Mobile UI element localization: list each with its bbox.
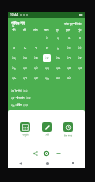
button[interactable]: ১৬ bbox=[54, 54, 62, 62]
staticText: ১২ bbox=[12, 56, 16, 60]
button[interactable]: ১ bbox=[43, 34, 51, 42]
button[interactable]: ৩ bbox=[65, 34, 73, 42]
button[interactable]: Recent apps bbox=[69, 159, 77, 167]
staticText: ৩০ bbox=[56, 76, 61, 80]
staticText: ২৯ bbox=[45, 76, 50, 80]
button[interactable]: ৮ bbox=[43, 44, 51, 52]
button[interactable]: অনুষ্ঠান bbox=[20, 122, 30, 137]
staticText: ১০ bbox=[67, 46, 71, 50]
button[interactable]: ৯ bbox=[54, 44, 62, 52]
staticText: ৩ bbox=[68, 36, 71, 40]
staticText: ১৯ bbox=[12, 66, 16, 70]
staticText: মঙ্গল bbox=[44, 29, 49, 32]
button[interactable]: ২৪ bbox=[65, 64, 73, 72]
staticText: ২ bbox=[57, 36, 60, 40]
staticText: বৃহস bbox=[66, 29, 71, 32]
staticText: ১৪ bbox=[34, 56, 38, 60]
staticText: ২৩ bbox=[56, 66, 61, 70]
button[interactable]: ১৯ bbox=[10, 64, 18, 72]
button[interactable]: ১১ bbox=[76, 44, 84, 52]
button[interactable]: ১২ bbox=[10, 54, 18, 62]
staticText: ১৪ বৈশাখ bbox=[11, 88, 22, 93]
staticText: ২১ bbox=[34, 66, 38, 70]
staticText: অনুষ্ঠান bbox=[22, 134, 29, 137]
button[interactable]: ১৫ bbox=[43, 54, 51, 62]
button[interactable]: Back bbox=[16, 159, 24, 167]
button[interactable]: ১৭ bbox=[65, 54, 73, 62]
staticText: ১৮ bbox=[78, 56, 82, 60]
staticText: ৩১ bbox=[67, 76, 71, 80]
staticText: ২৪ bbox=[67, 66, 71, 70]
button[interactable]: ২ bbox=[54, 34, 62, 42]
staticText: ৪ bbox=[79, 36, 81, 40]
button[interactable]: ২৬ bbox=[10, 74, 18, 82]
staticText: ৮ bbox=[46, 46, 49, 50]
staticText: শুক্র bbox=[78, 29, 82, 32]
button[interactable]: ২৫ bbox=[76, 64, 84, 72]
staticText: পূর্ববঙ্গ সন bbox=[11, 20, 25, 26]
staticText: দিন গণনা bbox=[64, 134, 72, 138]
button[interactable]: ৫ bbox=[10, 44, 18, 52]
staticText: ১৪৪৫ bbox=[26, 97, 31, 100]
staticText: ২৮ bbox=[34, 76, 39, 80]
staticText: ৯ bbox=[57, 46, 60, 50]
button[interactable]: Home bbox=[43, 159, 51, 167]
button[interactable]: ১০ bbox=[65, 44, 73, 52]
staticText: ১৫ bbox=[45, 56, 49, 60]
staticText: ১৪৩১ bbox=[23, 90, 28, 93]
button[interactable]: ১৮ bbox=[76, 54, 84, 62]
button[interactable]: ২৯ bbox=[43, 74, 51, 82]
button[interactable]: More bbox=[55, 150, 61, 156]
staticText: ২৯ এপ্রিল bbox=[11, 102, 22, 107]
staticText: 10:44 bbox=[10, 13, 19, 17]
staticText: ৫ bbox=[13, 46, 16, 50]
staticText: নোট bbox=[45, 134, 49, 137]
button[interactable]: ৬ bbox=[21, 44, 29, 52]
staticText: ২৭ bbox=[23, 76, 27, 80]
staticText: আজ বৃহস্পতিবার bbox=[64, 21, 82, 26]
staticText: ২৫ bbox=[78, 66, 83, 70]
staticText: শনি bbox=[12, 29, 16, 32]
button[interactable]: ২১ bbox=[32, 64, 40, 72]
staticText: ১৬ bbox=[56, 56, 60, 60]
button[interactable]: ৩০ bbox=[54, 74, 62, 82]
button[interactable]: ২৩ bbox=[54, 64, 62, 72]
staticText: ৭ bbox=[35, 46, 37, 50]
staticText: ১৭ bbox=[67, 56, 71, 60]
button[interactable]: ৩১ bbox=[65, 74, 73, 82]
button[interactable]: ৭ bbox=[32, 44, 40, 52]
staticText: ২২ bbox=[45, 66, 50, 70]
staticText: ১ bbox=[46, 36, 48, 40]
staticText: ১৩ bbox=[23, 56, 27, 60]
staticText: ২০ bbox=[23, 66, 27, 70]
staticText: বুধ bbox=[56, 29, 59, 32]
button[interactable]: ২২ bbox=[43, 64, 51, 72]
staticText: ২৮ শাওয়াল bbox=[11, 95, 25, 100]
staticText: ৬ bbox=[24, 46, 27, 50]
staticText: ১১ bbox=[78, 46, 82, 50]
button[interactable]: ৪ bbox=[76, 34, 84, 42]
button[interactable]: Share bbox=[32, 150, 38, 156]
button[interactable]: ২০ bbox=[21, 64, 29, 72]
button[interactable]: Settings bbox=[43, 150, 49, 156]
staticText: ২০২৪ bbox=[23, 104, 28, 107]
staticText: রবি bbox=[23, 29, 26, 32]
button[interactable]: ১৩ bbox=[21, 54, 29, 62]
button[interactable]: দিন গণনা bbox=[63, 122, 73, 138]
button[interactable]: ২৭ bbox=[21, 74, 29, 82]
button[interactable]: নোট bbox=[42, 122, 52, 137]
staticText: ২৬ bbox=[12, 76, 17, 80]
button[interactable]: ১৪ bbox=[32, 54, 40, 62]
button[interactable]: ২৮ bbox=[32, 74, 40, 82]
staticText: সোম bbox=[33, 29, 38, 32]
